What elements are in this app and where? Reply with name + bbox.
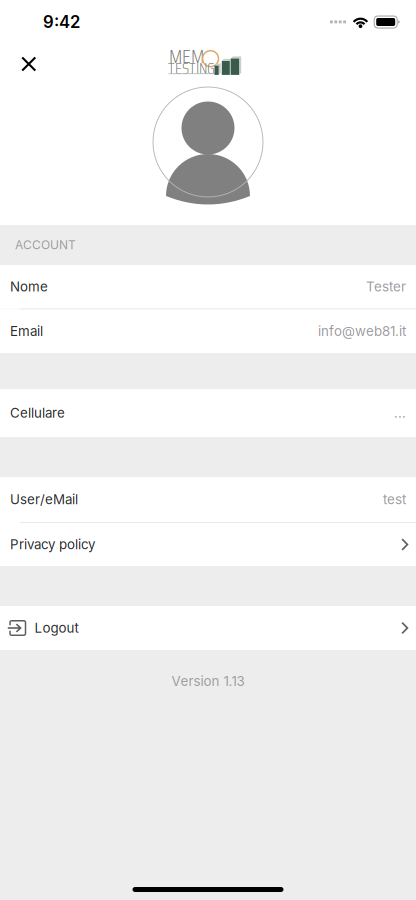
staticText: MEM (169, 40, 204, 72)
staticText: Version 1.13 (171, 673, 244, 689)
button[interactable]: Privacy policy (0, 523, 416, 566)
staticText: TESTING (168, 56, 215, 81)
button[interactable]: Close (12, 47, 45, 81)
button[interactable]: User/eMail (0, 477, 416, 522)
staticText: test (383, 491, 406, 507)
button[interactable]: Logout (0, 606, 416, 650)
staticText: Privacy policy (10, 536, 95, 552)
staticText: info@web81.it (318, 323, 406, 339)
staticText: ... (394, 405, 406, 421)
staticText: User/eMail (10, 491, 78, 507)
staticText: ACCOUNT (15, 238, 76, 252)
staticText: Cellulare (10, 405, 65, 421)
button[interactable]: Cellulare (0, 389, 416, 437)
button[interactable]: Email (0, 309, 416, 353)
staticText: 9:42 (43, 12, 80, 32)
staticText: Nome (10, 279, 48, 295)
button[interactable]: Nome (0, 265, 416, 308)
staticText: Email (10, 323, 43, 339)
staticText: Logout (34, 620, 78, 636)
staticText: Tester (366, 279, 406, 295)
